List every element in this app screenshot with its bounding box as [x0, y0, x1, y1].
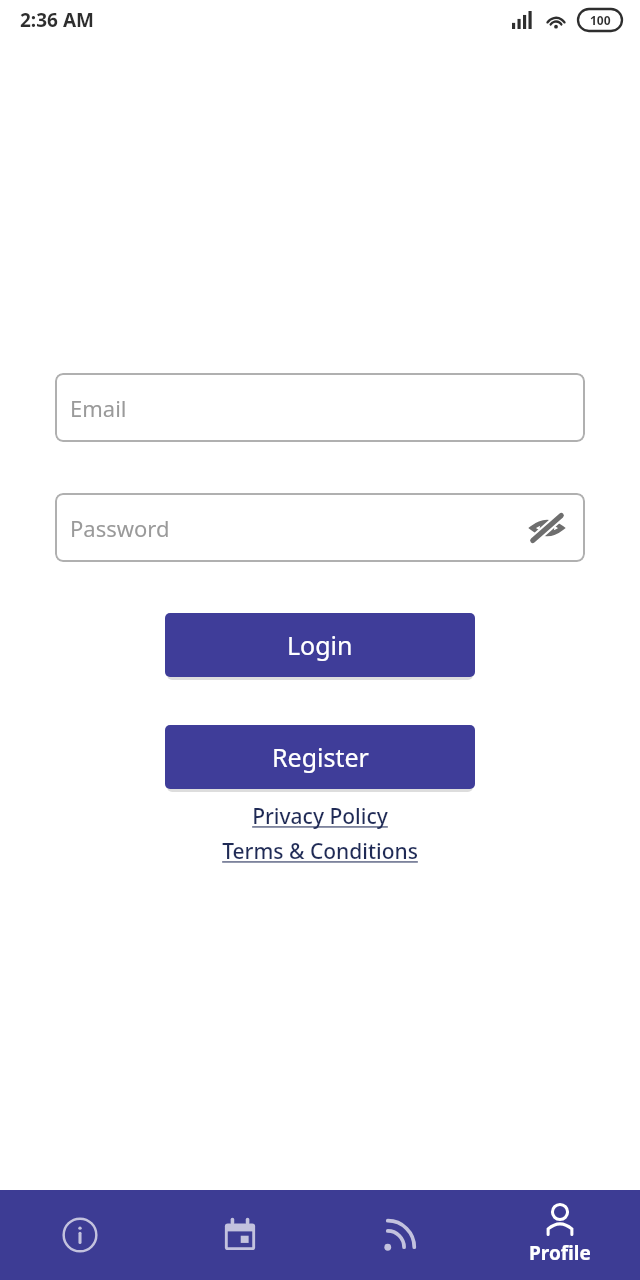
staticText: Login: [287, 628, 353, 662]
button[interactable]: Login: [165, 613, 475, 677]
button[interactable]: Info: [0, 1190, 160, 1280]
button[interactable]: Privacy Policy: [252, 802, 388, 831]
button[interactable]: Calendar: [160, 1190, 320, 1280]
button[interactable]: Feed: [320, 1190, 480, 1280]
button[interactable]: Profile: [480, 1190, 640, 1280]
button[interactable]: Toggle password visibility: [527, 508, 567, 548]
staticText: Register: [272, 740, 369, 774]
button[interactable]: Terms & Conditions: [222, 837, 418, 866]
staticText: Profile: [529, 1240, 591, 1266]
button[interactable]: Register: [165, 725, 475, 789]
button[interactable]: Email: [55, 373, 585, 442]
staticText: 2:36 AM: [20, 7, 94, 33]
staticText: Privacy Policy: [252, 802, 388, 831]
staticText: Email: [70, 393, 127, 423]
staticText: Terms & Conditions: [222, 837, 418, 866]
button[interactable]: Password: [55, 493, 585, 562]
staticText: Password: [70, 513, 170, 543]
staticText: 100: [590, 12, 611, 28]
